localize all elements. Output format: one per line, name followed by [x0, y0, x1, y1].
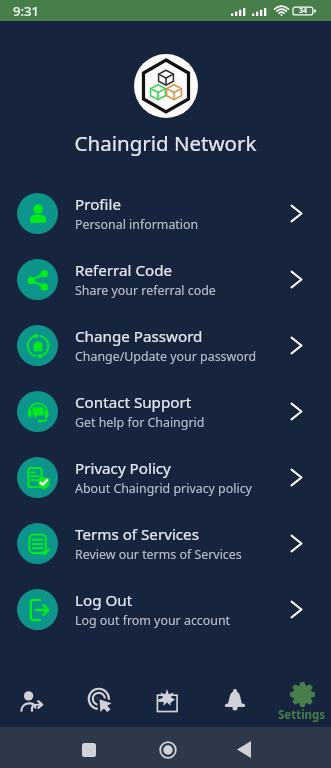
staticText: Change/Update your password — [75, 348, 257, 365]
button[interactable]: Back — [237, 741, 251, 758]
staticText: Referral Code — [75, 260, 173, 281]
staticText: Personal information — [75, 216, 199, 233]
staticText: 9:31 — [13, 2, 39, 20]
button[interactable]: Market — [134, 661, 200, 727]
button[interactable]: Terms of Services — [0, 510, 331, 576]
staticText: Profile — [75, 194, 121, 215]
staticText: Settings — [278, 707, 326, 723]
button[interactable]: Home — [159, 741, 177, 759]
staticText: Privacy Policy — [75, 458, 171, 479]
button[interactable]: Refer — [0, 661, 64, 727]
button[interactable]: Profile — [0, 180, 331, 246]
staticText: About Chaingrid privacy policy — [75, 480, 252, 497]
button[interactable]: Log Out — [0, 576, 331, 642]
button[interactable]: Contact Support — [0, 378, 331, 444]
staticText: Get help for Chaingrid — [75, 414, 205, 431]
staticText: Contact Support — [75, 392, 192, 413]
staticText: Terms of Services — [75, 524, 199, 545]
button[interactable]: Change Password — [0, 312, 331, 378]
button[interactable]: Settings — [269, 661, 331, 727]
button[interactable]: Referral Code — [0, 246, 331, 312]
staticText: Share your referral code — [75, 282, 216, 299]
staticText: 34 — [299, 6, 308, 16]
button[interactable]: Privacy Policy — [0, 444, 331, 510]
staticText: Chaingrid Network — [0, 129, 331, 157]
button[interactable]: Recents — [82, 743, 96, 757]
staticText: Log out from your account — [75, 612, 231, 629]
staticText: Review our terms of Services — [75, 546, 242, 563]
button[interactable]: Alerts — [202, 661, 268, 727]
button[interactable]: Mine — [67, 661, 133, 727]
staticText: Change Password — [75, 326, 203, 347]
staticText: Log Out — [75, 590, 133, 611]
